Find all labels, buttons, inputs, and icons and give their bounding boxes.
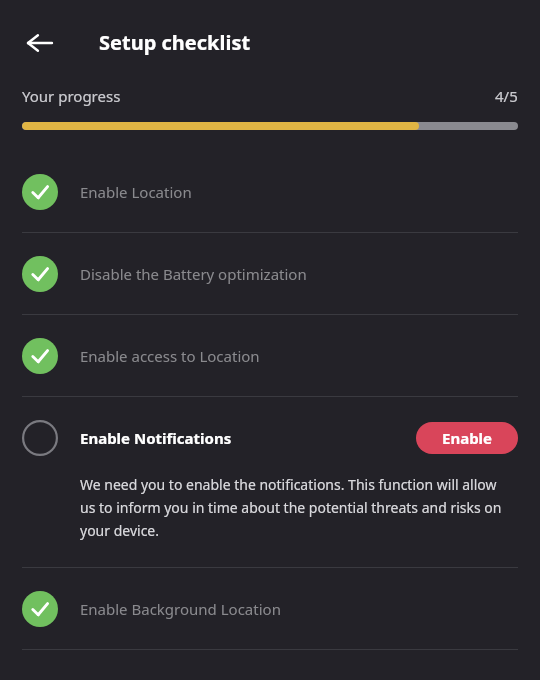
button[interactable]: Enable Background Location <box>0 568 540 649</box>
staticText: Enable Background Location <box>80 599 281 619</box>
button[interactable]: Enable access to Location <box>0 315 540 396</box>
staticText: Setup checklist <box>99 29 251 56</box>
button[interactable]: Disable the Battery optimization <box>0 233 540 314</box>
staticText: 4/5 <box>495 86 518 106</box>
button[interactable]: Enable <box>416 422 518 454</box>
button[interactable]: Back <box>16 19 64 67</box>
staticText: Enable access to Location <box>80 346 260 366</box>
staticText: Enable Location <box>80 182 192 202</box>
staticText: Enable Notifications <box>80 428 232 448</box>
button[interactable]: Enable Notifications <box>0 397 540 567</box>
staticText: Your progress <box>22 86 121 106</box>
button[interactable]: Enable Location <box>0 151 540 232</box>
staticText: Enable <box>442 428 493 448</box>
staticText: We need you to enable the notifications.… <box>80 475 512 540</box>
staticText: Disable the Battery optimization <box>80 264 307 284</box>
